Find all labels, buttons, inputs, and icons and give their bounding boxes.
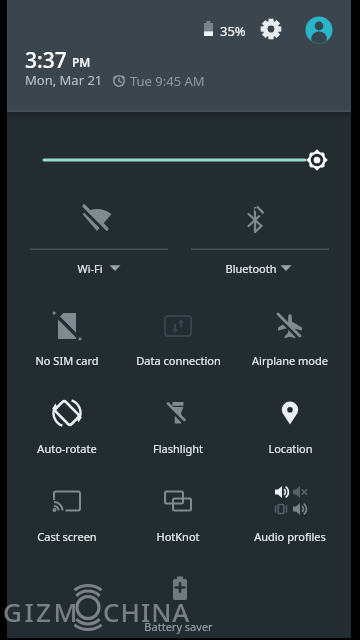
button[interactable] (257, 15, 285, 43)
staticText: CHINA (103, 594, 191, 629)
staticText: Data connection (136, 353, 221, 368)
staticText: Flashlight (153, 441, 203, 456)
button[interactable] (7, 459, 122, 547)
button[interactable] (122, 371, 237, 459)
staticText: Auto-rotate (37, 441, 97, 456)
button[interactable] (305, 16, 333, 44)
staticText: Battery saver (144, 619, 213, 634)
staticText: Cast screen (37, 529, 97, 544)
staticText: No SIM card (35, 353, 99, 368)
button[interactable] (7, 195, 179, 283)
staticText: Bluetooth (225, 261, 277, 276)
staticText: Mon, Mar 21 (25, 71, 103, 89)
button[interactable] (237, 459, 352, 547)
staticText: 35% (220, 22, 246, 40)
button[interactable] (122, 283, 237, 371)
button[interactable] (7, 371, 122, 459)
button[interactable] (237, 371, 352, 459)
button[interactable] (122, 459, 237, 547)
staticText: Airplane mode (252, 353, 328, 368)
staticText: HotKnot (156, 529, 200, 544)
staticText: Location (268, 441, 313, 456)
button[interactable] (20, 140, 340, 180)
button[interactable] (122, 547, 237, 638)
staticText: Tue 9:45 AM (130, 72, 205, 90)
staticText: PM (72, 54, 91, 70)
staticText: Audio profiles (254, 529, 326, 544)
button[interactable] (179, 195, 351, 283)
staticText: 3:37 (25, 46, 67, 75)
staticText: Wi-Fi (77, 261, 103, 276)
staticText: GIZM (3, 594, 80, 629)
button[interactable] (237, 283, 352, 371)
button[interactable] (7, 283, 122, 371)
